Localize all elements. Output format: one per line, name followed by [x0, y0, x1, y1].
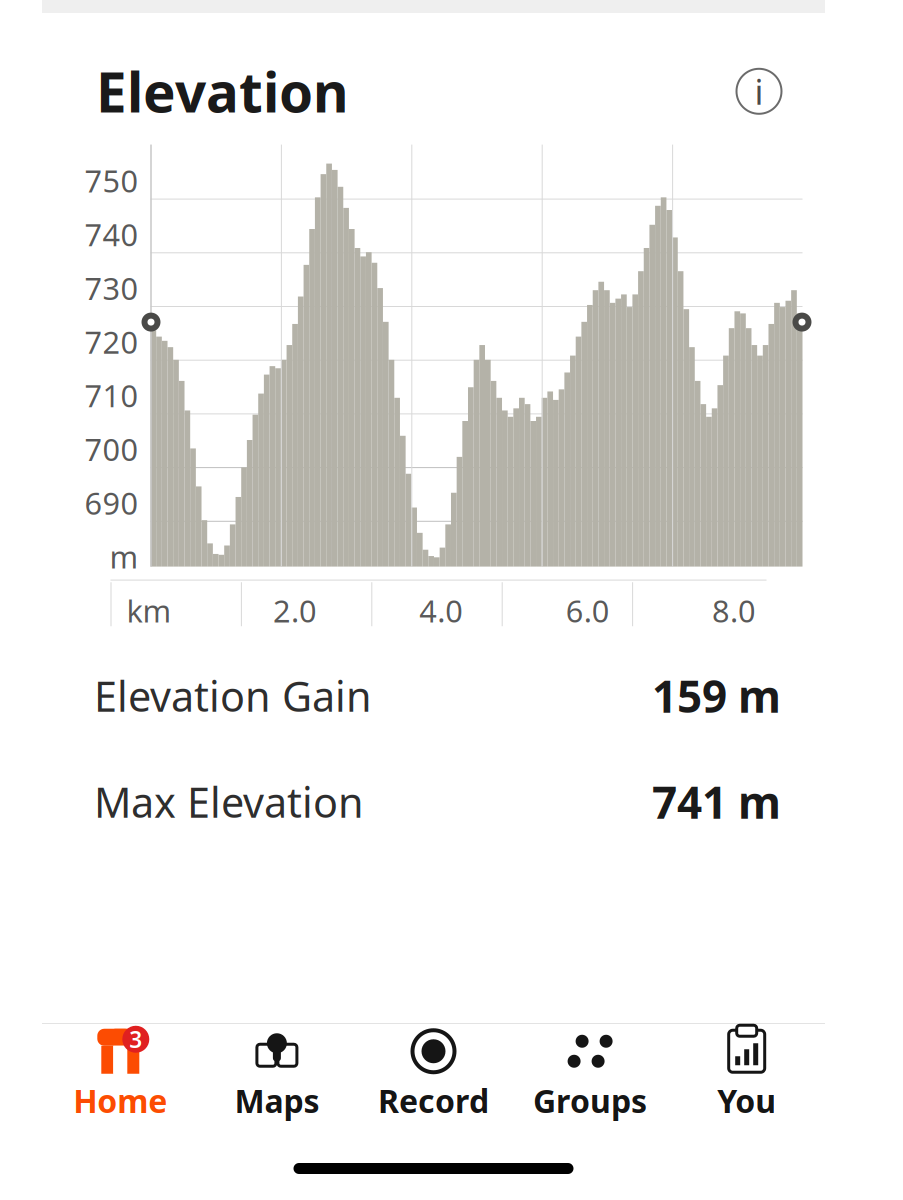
staticText: 700	[84, 429, 138, 469]
staticText: 8.0	[712, 590, 756, 631]
staticText: 710	[84, 375, 138, 416]
staticText: 159 m	[652, 666, 781, 725]
staticText: i	[754, 68, 763, 114]
button[interactable]: Maps	[199, 1020, 355, 1128]
staticText: 750	[84, 160, 138, 201]
staticText: 6.0	[566, 590, 610, 631]
staticText: 720	[84, 321, 138, 362]
staticText: Groups	[533, 1079, 647, 1122]
staticText: Record	[378, 1079, 489, 1122]
staticText: You	[717, 1079, 776, 1122]
staticText: Elevation Gain	[94, 668, 372, 723]
staticText: 2.0	[273, 590, 317, 631]
button[interactable]: Groups	[512, 1020, 668, 1128]
staticText: 3	[129, 1024, 142, 1054]
button[interactable]: 3	[42, 1020, 199, 1128]
staticText: 690	[84, 482, 138, 523]
staticText: 730	[84, 268, 138, 308]
button[interactable]: Record	[355, 1020, 512, 1128]
staticText: 741 m	[652, 772, 781, 831]
staticText: km	[126, 590, 171, 631]
staticText: m	[109, 536, 138, 577]
staticText: Home	[73, 1079, 167, 1122]
staticText: Max Elevation	[94, 774, 364, 829]
button[interactable]: You	[668, 1020, 825, 1128]
staticText: 4.0	[419, 590, 463, 631]
button[interactable]: About elevation	[733, 65, 785, 117]
staticText: Elevation	[96, 55, 349, 128]
staticText: Maps	[234, 1079, 319, 1122]
staticText: 740	[84, 214, 138, 255]
